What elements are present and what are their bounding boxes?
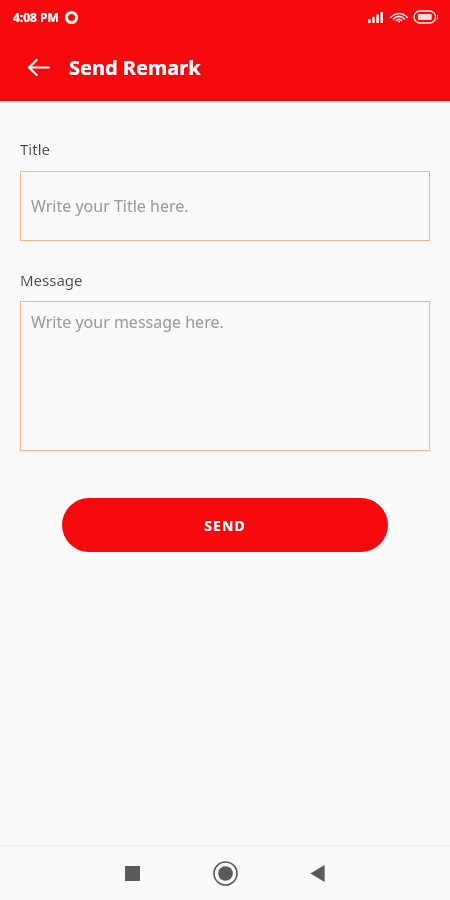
button[interactable]: Back bbox=[14, 43, 62, 91]
staticText: Write your message here. bbox=[31, 311, 224, 333]
button[interactable]: Write your message here. bbox=[20, 301, 430, 451]
staticText: SEND bbox=[204, 516, 246, 535]
button[interactable]: SEND bbox=[62, 498, 388, 552]
button[interactable]: Back bbox=[293, 849, 341, 897]
staticText: 4:08 PM bbox=[13, 9, 59, 25]
staticText: Title bbox=[20, 139, 50, 159]
staticText: Send Remark bbox=[69, 54, 201, 81]
button[interactable]: Write your Title here. bbox=[20, 171, 430, 241]
staticText: Write your Title here. bbox=[31, 195, 189, 217]
button[interactable]: Recent apps bbox=[108, 849, 156, 897]
button[interactable]: Home bbox=[201, 849, 249, 897]
staticText: Message bbox=[20, 270, 83, 290]
